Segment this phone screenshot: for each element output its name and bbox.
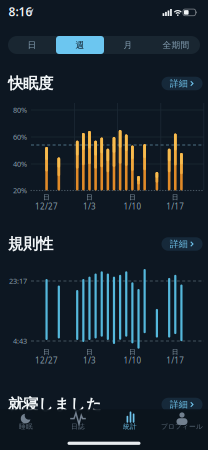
- staticText: 日: [43, 348, 50, 356]
- staticText: 8:16: [8, 3, 32, 19]
- staticText: 日: [172, 348, 179, 356]
- button[interactable]: 詳細: [161, 77, 202, 90]
- button[interactable]: 週: [56, 36, 104, 54]
- staticText: 80%: [13, 105, 27, 115]
- staticText: 1/3: [83, 201, 96, 212]
- staticText: 規則性: [8, 234, 53, 254]
- staticText: 睡眠: [19, 422, 33, 431]
- staticText: 詳細: [170, 78, 188, 89]
- staticText: 12/27: [35, 201, 58, 212]
- staticText: 快眠度: [8, 74, 53, 93]
- staticText: 日: [43, 193, 50, 201]
- staticText: 日: [27, 39, 36, 50]
- staticText: 統計: [123, 422, 137, 431]
- staticText: 日: [129, 348, 136, 356]
- button[interactable]: 睡眠: [0, 404, 52, 440]
- button[interactable]: 詳細: [161, 398, 202, 411]
- button[interactable]: 全期間: [152, 36, 200, 54]
- button[interactable]: 統計: [104, 404, 156, 440]
- staticText: 23:17: [9, 276, 27, 286]
- staticText: 20%: [13, 185, 27, 195]
- staticText: 60%: [13, 132, 27, 142]
- staticText: 4:43: [13, 336, 27, 346]
- staticText: 40%: [13, 159, 27, 169]
- button[interactable]: プロフィール: [156, 404, 208, 440]
- staticText: 詳細: [170, 399, 188, 410]
- staticText: 日誌: [71, 422, 85, 431]
- staticText: 1/3: [83, 355, 96, 366]
- button[interactable]: 日: [8, 36, 56, 54]
- staticText: 1/10: [123, 355, 141, 366]
- staticText: 日: [172, 193, 179, 201]
- staticText: 就寝しました: [8, 395, 102, 414]
- button[interactable]: 詳細: [161, 237, 202, 251]
- staticText: 日: [129, 193, 136, 201]
- staticText: 週: [75, 39, 84, 50]
- staticText: 月: [123, 39, 132, 50]
- staticText: 全期間: [162, 39, 189, 50]
- staticText: 1/10: [123, 201, 141, 212]
- staticText: 日: [86, 193, 93, 201]
- button[interactable]: 月: [104, 36, 152, 54]
- staticText: 12/27: [35, 355, 58, 366]
- staticText: 日: [86, 348, 93, 356]
- staticText: 1/17: [166, 355, 184, 366]
- staticText: 詳細: [170, 238, 188, 250]
- staticText: 1/17: [166, 201, 184, 212]
- button[interactable]: 日誌: [52, 404, 104, 440]
- staticText: プロフィール: [161, 422, 203, 431]
